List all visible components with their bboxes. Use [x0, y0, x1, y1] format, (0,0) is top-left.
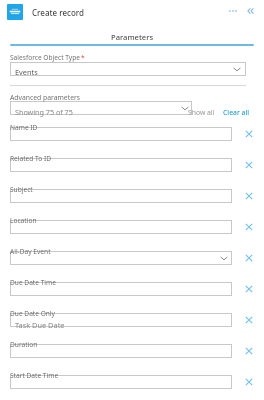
- staticText: Start Date Time: [10, 371, 59, 380]
- button[interactable]: Clear all: [223, 108, 264, 117]
- staticText: *: [81, 53, 85, 62]
- staticText: Showing 75 of 75: [15, 107, 73, 117]
- staticText: Salesforce Object Type: [10, 53, 80, 62]
- button[interactable]: [0, 349, 264, 363]
- button[interactable]: Show all: [188, 108, 215, 117]
- button[interactable]: Collapse: [244, 3, 260, 19]
- staticText: Parameters: [111, 32, 154, 42]
- button[interactable]: [0, 163, 264, 177]
- button[interactable]: [0, 287, 264, 301]
- staticText: Due Date Time: [10, 278, 56, 287]
- staticText: Subject: [10, 185, 33, 194]
- staticText: Task Due Date: [15, 320, 65, 330]
- staticText: Due Date Only: [10, 309, 55, 318]
- staticText: Location: [10, 216, 37, 225]
- staticText: Events: [15, 67, 38, 77]
- button[interactable]: [0, 225, 264, 239]
- staticText: Name ID: [10, 123, 38, 132]
- other: Salesforce connector: [7, 4, 23, 20]
- button[interactable]: [0, 194, 264, 208]
- button[interactable]: [0, 132, 264, 146]
- button[interactable]: [0, 380, 264, 394]
- button[interactable]: [0, 256, 264, 270]
- staticText: Duration: [10, 340, 38, 349]
- staticText: Show all: [188, 108, 215, 117]
- staticText: Related To ID: [10, 154, 52, 163]
- staticText: Advanced parameters: [10, 93, 81, 102]
- button[interactable]: Parameters: [10, 24, 264, 46]
- staticText: Clear all: [223, 108, 250, 117]
- button[interactable]: Task Due Date: [0, 318, 264, 332]
- button[interactable]: More options: [225, 3, 241, 19]
- staticText: All-Day Event: [10, 247, 51, 256]
- staticText: Create record: [32, 7, 85, 18]
